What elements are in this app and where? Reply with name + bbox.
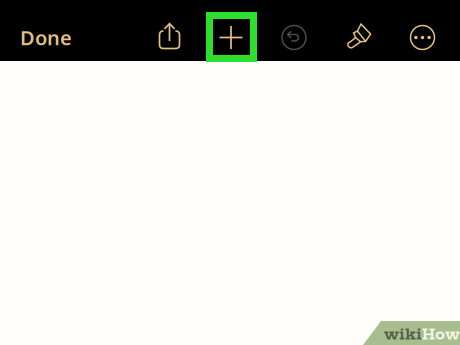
staticText: Done (20, 24, 72, 51)
staticText: How (422, 325, 460, 343)
button[interactable]: Markup tools (334, 5, 380, 66)
button[interactable]: Undo (271, 7, 317, 68)
button[interactable]: Share (146, 6, 192, 67)
button[interactable]: Done (8, 7, 84, 68)
button[interactable]: More (399, 7, 445, 68)
button[interactable]: Add (208, 7, 254, 68)
staticText: wiki (384, 325, 422, 343)
